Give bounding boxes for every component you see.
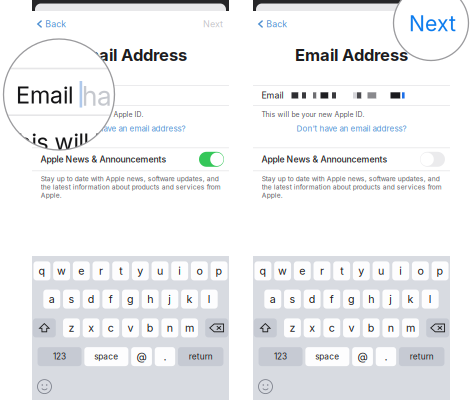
button[interactable]: . <box>376 347 396 366</box>
staticText: . <box>163 350 166 363</box>
button[interactable]: Emoji keyboard <box>37 380 51 394</box>
staticText: Apple. <box>41 191 62 199</box>
button[interactable]: x <box>304 318 321 337</box>
button[interactable]: @ <box>352 347 373 366</box>
button[interactable]: Emoji keyboard <box>258 380 272 394</box>
button[interactable]: y <box>353 261 370 280</box>
staticText: Apple. <box>262 191 283 199</box>
button[interactable]: . <box>155 347 175 366</box>
button[interactable]: r <box>313 261 330 280</box>
button[interactable]: @ <box>131 347 152 366</box>
button[interactable]: h <box>363 290 380 309</box>
button[interactable]: a <box>264 290 281 309</box>
button[interactable]: f <box>102 290 119 309</box>
button[interactable]: h <box>142 290 159 309</box>
staticText: Don't have an email address? <box>296 124 406 133</box>
button[interactable]: Apple News and Announcements <box>420 152 445 167</box>
button[interactable]: b <box>363 318 380 337</box>
button[interactable]: Delete <box>205 318 228 337</box>
staticText: w <box>278 264 287 277</box>
button[interactable]: n <box>161 318 178 337</box>
button[interactable]: o <box>191 261 208 280</box>
button[interactable]: g <box>343 290 360 309</box>
button[interactable]: n <box>382 318 399 337</box>
button[interactable]: r <box>92 261 109 280</box>
staticText: space <box>94 352 118 362</box>
button[interactable]: l <box>422 290 439 309</box>
button[interactable]: 123 <box>259 347 303 366</box>
button[interactable]: b <box>142 318 159 337</box>
staticText: s <box>68 293 74 305</box>
button[interactable]: Apple News & Announcements <box>253 148 450 170</box>
staticText: n <box>388 321 394 334</box>
staticText: the latest information about products an… <box>262 183 442 191</box>
button[interactable]: t <box>112 261 129 280</box>
staticText: v <box>348 321 354 334</box>
button[interactable]: Next <box>424 16 450 32</box>
button[interactable]: q <box>33 261 50 280</box>
button[interactable]: Don't have an email address? <box>75 122 185 134</box>
button[interactable]: d <box>83 290 100 309</box>
button[interactable]: g <box>122 290 139 309</box>
button[interactable]: k <box>181 290 198 309</box>
button[interactable]: z <box>284 318 301 337</box>
staticText: o <box>196 264 202 277</box>
button[interactable]: Delete <box>426 318 449 337</box>
button[interactable]: e <box>294 261 311 280</box>
button[interactable]: l <box>201 290 218 309</box>
button[interactable]: u <box>152 261 168 280</box>
button[interactable]: Don't have an email address? <box>296 122 406 134</box>
button[interactable]: u <box>373 261 389 280</box>
button[interactable]: j <box>161 290 178 309</box>
button[interactable]: s <box>63 290 80 309</box>
button[interactable]: v <box>343 318 360 337</box>
button[interactable]: c <box>323 318 340 337</box>
staticText: e <box>299 264 305 277</box>
button[interactable]: Apple News and Announcements <box>199 152 224 167</box>
button[interactable]: j <box>382 290 399 309</box>
button[interactable]: s <box>284 290 301 309</box>
button[interactable]: w <box>274 261 291 280</box>
button[interactable]: i <box>171 261 188 280</box>
button[interactable]: z <box>63 318 80 337</box>
button[interactable]: Shift <box>33 318 56 337</box>
button[interactable]: Next <box>203 16 229 32</box>
button[interactable]: a <box>43 290 60 309</box>
button[interactable]: y <box>132 261 149 280</box>
button[interactable]: w <box>53 261 70 280</box>
button[interactable]: 123 <box>38 347 82 366</box>
button[interactable]: Back <box>253 16 287 32</box>
button[interactable]: e <box>73 261 90 280</box>
button[interactable]: k <box>402 290 419 309</box>
button[interactable]: Back <box>32 16 66 32</box>
button[interactable]: m <box>402 318 419 337</box>
staticText: x <box>309 321 315 334</box>
staticText: Back <box>45 19 66 29</box>
button[interactable]: Apple News & Announcements <box>32 148 229 170</box>
button[interactable]: q <box>254 261 271 280</box>
staticText: b <box>147 321 154 334</box>
staticText: h <box>368 293 374 305</box>
staticText: n <box>167 321 173 334</box>
button[interactable]: x <box>83 318 100 337</box>
button[interactable]: return <box>178 347 223 366</box>
button[interactable]: v <box>122 318 139 337</box>
button[interactable]: m <box>181 318 198 337</box>
button[interactable]: space <box>305 347 349 366</box>
staticText: Next <box>203 18 223 29</box>
staticText: h <box>147 293 153 305</box>
button[interactable]: i <box>392 261 409 280</box>
button[interactable]: return <box>399 347 444 366</box>
button[interactable]: c <box>102 318 119 337</box>
button[interactable]: f <box>323 290 340 309</box>
button[interactable]: p <box>432 261 448 280</box>
button[interactable]: space <box>84 347 128 366</box>
button[interactable]: Shift <box>254 318 277 337</box>
staticText: d <box>88 293 95 305</box>
staticText: Stay up to date with Apple news, softwar… <box>41 175 219 183</box>
button[interactable]: p <box>211 261 227 280</box>
button[interactable]: o <box>412 261 429 280</box>
button[interactable]: d <box>304 290 321 309</box>
staticText: l <box>429 293 432 305</box>
button[interactable]: t <box>333 261 350 280</box>
